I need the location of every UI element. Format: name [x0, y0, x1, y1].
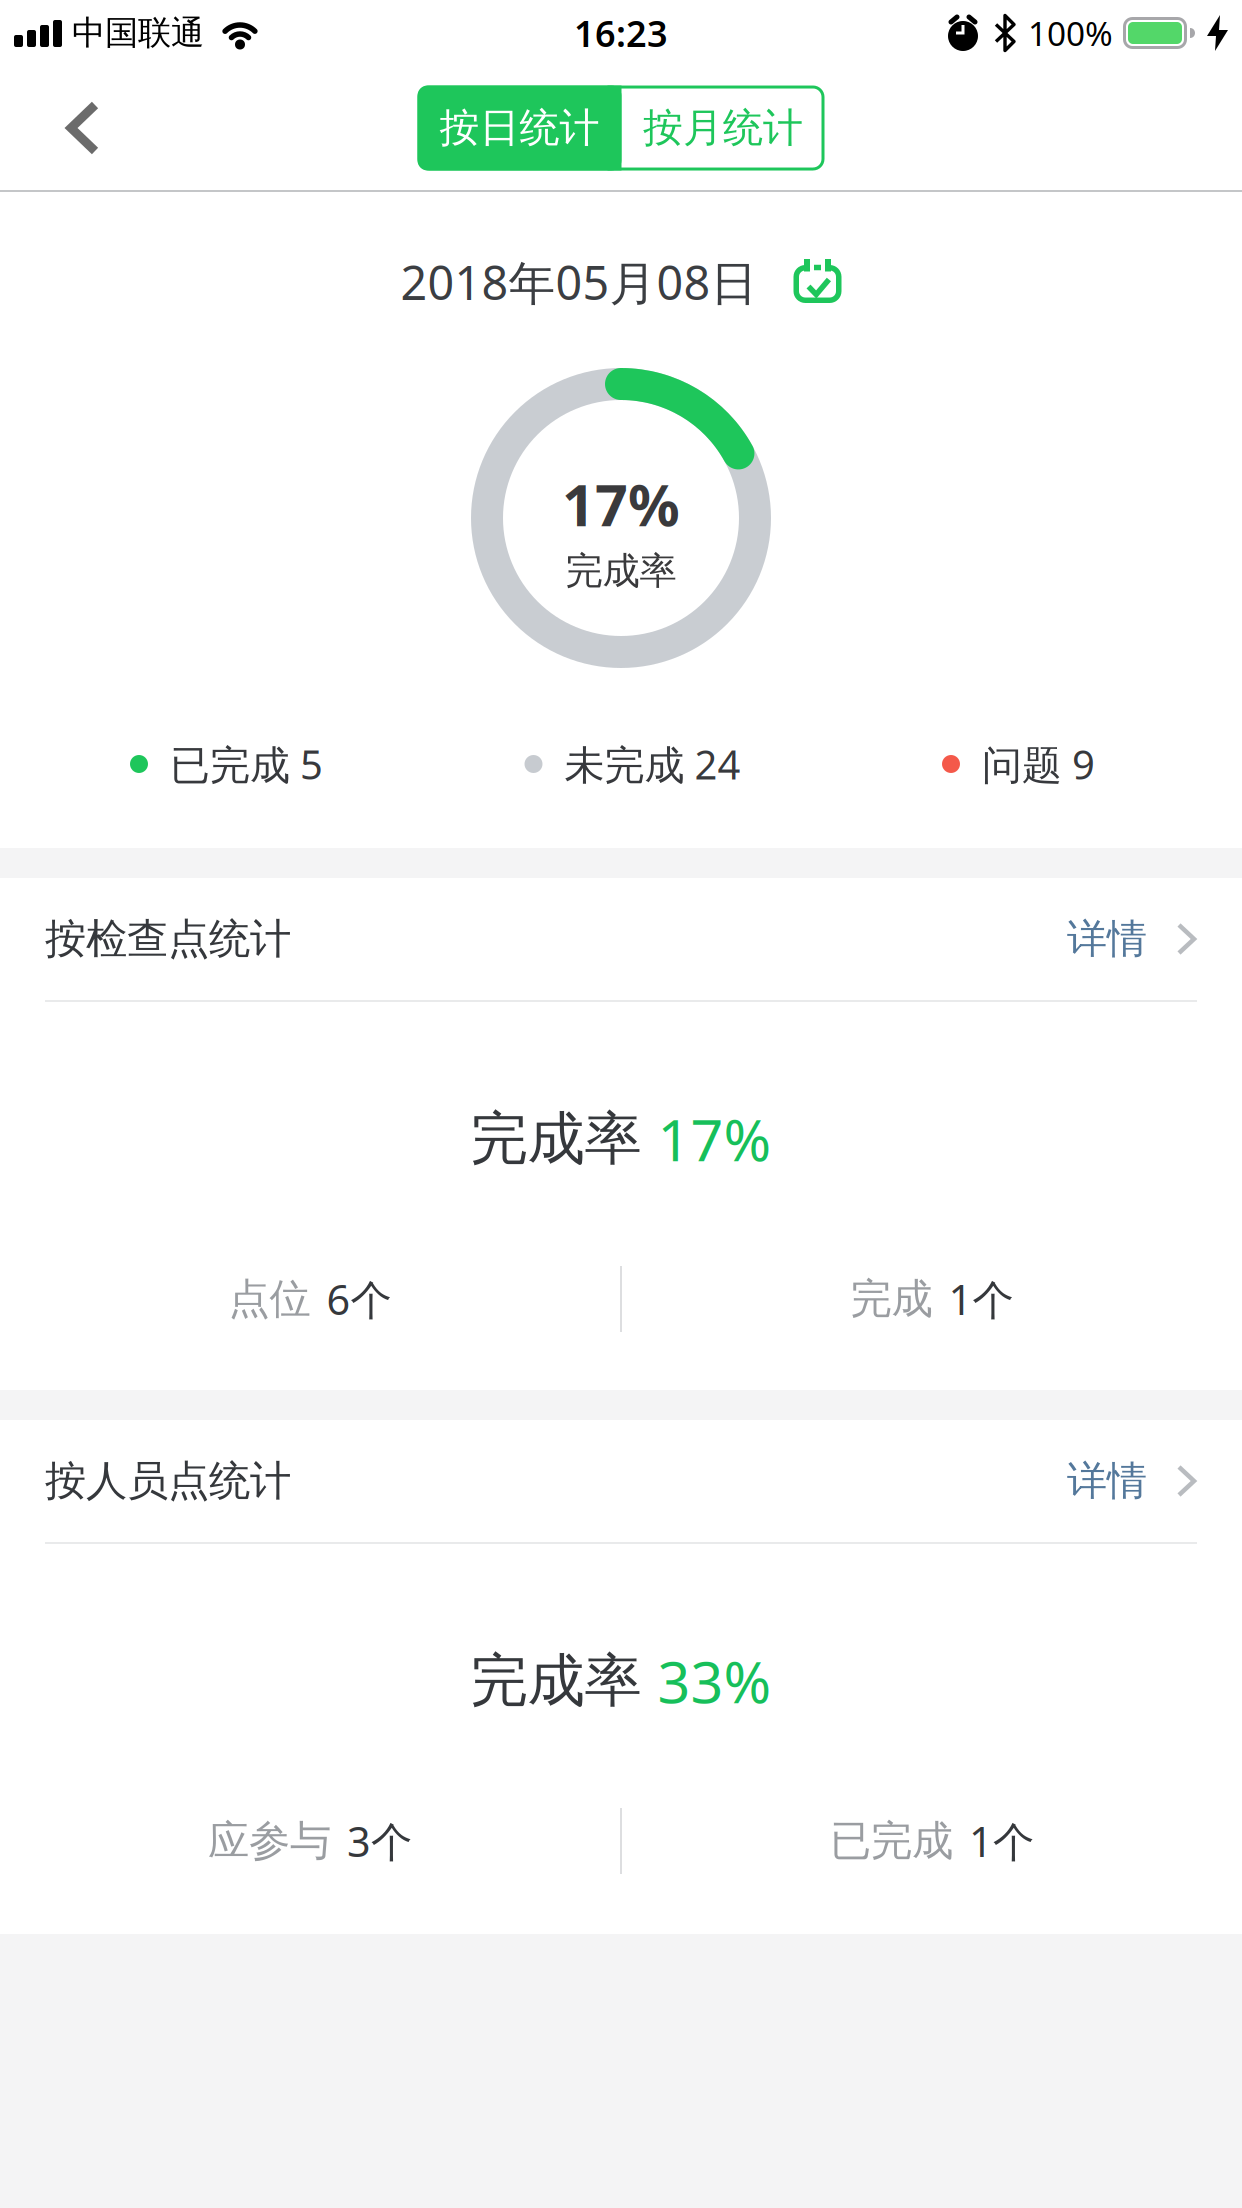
- staticText: 完成率: [470, 1104, 641, 1174]
- staticText: 17%: [657, 1101, 771, 1177]
- staticText: 2018年05月08日: [400, 251, 757, 313]
- staticText: 完成: [850, 1274, 932, 1324]
- staticText: 100%: [1028, 11, 1113, 55]
- staticText: 详情: [1067, 914, 1147, 963]
- staticText: 6个: [326, 1272, 391, 1326]
- staticText: 应参与: [208, 1816, 331, 1866]
- button[interactable]: 详情: [1067, 1456, 1197, 1505]
- button[interactable]: 按月统计: [621, 85, 824, 170]
- staticText: 3个: [347, 1814, 412, 1868]
- staticText: 中国联通: [72, 12, 204, 53]
- staticText: 1个: [948, 1272, 1013, 1326]
- staticText: 33%: [657, 1643, 771, 1719]
- staticText: 按月统计: [643, 103, 803, 152]
- staticText: 完成率: [565, 548, 676, 594]
- button[interactable]: Back: [0, 103, 128, 153]
- staticText: 按人员点统计: [45, 1456, 291, 1506]
- staticText: 按日统计: [439, 103, 599, 152]
- staticText: 点位: [228, 1274, 310, 1324]
- staticText: 按检查点统计: [45, 914, 291, 964]
- staticText: 1个: [969, 1814, 1034, 1868]
- staticText: 问题 9: [982, 737, 1095, 790]
- staticText: 详情: [1067, 1456, 1147, 1505]
- staticText: 已完成: [830, 1816, 953, 1866]
- button[interactable]: 选择日期: [400, 192, 841, 306]
- staticText: 已完成 5: [170, 737, 323, 790]
- staticText: 完成率: [470, 1646, 641, 1716]
- button[interactable]: 详情: [1067, 914, 1197, 963]
- staticText: 16:23: [574, 9, 668, 57]
- button[interactable]: 按日统计: [417, 85, 621, 170]
- staticText: 17%: [562, 466, 680, 542]
- staticText: 未完成 24: [564, 737, 740, 790]
